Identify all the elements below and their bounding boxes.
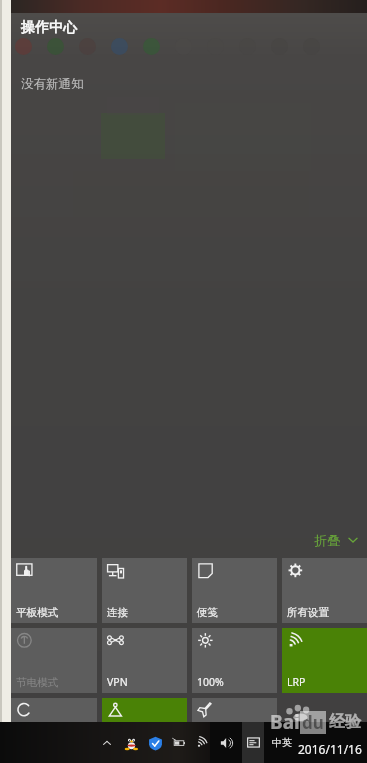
- button[interactable]: 折叠: [306, 529, 367, 551]
- staticText: du: [302, 711, 324, 734]
- button[interactable]: 连接: [102, 558, 187, 623]
- staticText: 100%: [197, 675, 224, 689]
- button[interactable]: LRP: [282, 628, 367, 693]
- staticText: 定位: [107, 746, 128, 759]
- button[interactable]: 免打扰时间: [11, 698, 97, 763]
- button[interactable]: Show hidden icons: [98, 734, 116, 752]
- button[interactable]: 便笺: [192, 558, 277, 623]
- button[interactable]: VPN: [102, 628, 187, 693]
- staticText: 连接: [107, 606, 128, 619]
- button[interactable]: 定位: [102, 698, 187, 763]
- button[interactable]: 所有设置: [282, 558, 367, 623]
- button[interactable]: 100%: [192, 628, 277, 693]
- staticText: 折叠: [314, 532, 340, 548]
- staticText: Bai: [270, 709, 300, 735]
- button[interactable]: Action Center: [242, 722, 264, 763]
- button[interactable]: QQ: [122, 734, 140, 752]
- button[interactable]: Volume: [218, 734, 236, 752]
- staticText: 中英: [272, 736, 292, 749]
- button[interactable]: 2016/11/16: [298, 741, 362, 757]
- button[interactable]: 中英: [270, 736, 294, 749]
- staticText: LRP: [287, 675, 306, 689]
- staticText: VPN: [107, 675, 128, 689]
- staticText: 没有新通知: [21, 76, 84, 92]
- button[interactable]: Battery: [170, 734, 188, 752]
- staticText: 经验: [329, 712, 361, 732]
- staticText: 节电模式: [16, 676, 58, 689]
- button[interactable]: 平板模式: [11, 558, 97, 623]
- button[interactable]: 节电模式: [11, 628, 97, 693]
- button[interactable]: Network: [194, 734, 212, 752]
- staticText: 所有设置: [287, 606, 329, 619]
- staticText: 飞行模式: [197, 746, 239, 759]
- staticText: 便笺: [197, 606, 218, 619]
- button[interactable]: 飞行模式: [192, 698, 277, 763]
- button[interactable]: PC Manager: [146, 734, 164, 752]
- staticText: 平板模式: [16, 606, 58, 619]
- staticText: 操作中心: [21, 19, 77, 37]
